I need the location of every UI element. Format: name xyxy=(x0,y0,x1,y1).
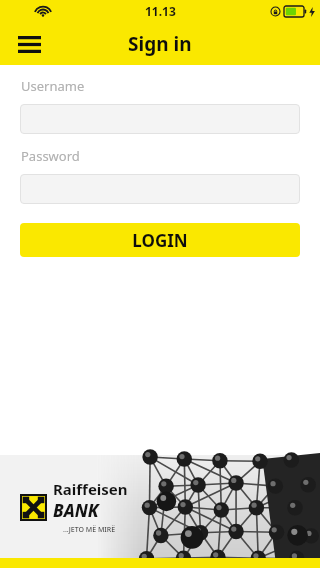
staticText: 11.13 xyxy=(145,3,176,19)
staticText: Sign in xyxy=(128,31,192,57)
staticText: Username xyxy=(21,77,85,95)
button[interactable] xyxy=(20,104,300,134)
staticText: BANK xyxy=(53,499,99,522)
button[interactable]: Open navigation menu xyxy=(10,27,48,61)
button[interactable] xyxy=(20,174,300,204)
staticText: Password xyxy=(21,147,80,165)
staticText: ...JETO MË MIRË xyxy=(63,525,116,535)
button[interactable]: LOGIN xyxy=(20,223,300,257)
staticText: Raiffeisen xyxy=(53,479,128,499)
staticText: LOGIN xyxy=(132,229,188,252)
